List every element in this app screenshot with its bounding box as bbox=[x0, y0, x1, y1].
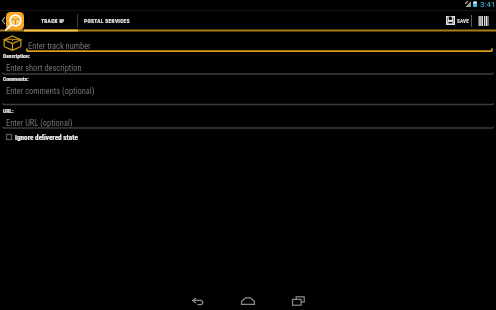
staticText: Ignore delivered state bbox=[15, 133, 78, 141]
staticText: URL: bbox=[3, 108, 14, 115]
button[interactable]: Back bbox=[174, 292, 222, 310]
button[interactable]: Enter comments (optional) bbox=[0, 85, 496, 99]
staticText: Description: bbox=[3, 53, 31, 60]
staticText: 3:41 bbox=[480, 0, 496, 9]
button[interactable]: Enter URL (optional) bbox=[0, 117, 496, 131]
button[interactable]: Home bbox=[224, 292, 272, 310]
staticText: Comments: bbox=[3, 76, 29, 83]
button[interactable]: Recent apps bbox=[274, 292, 322, 310]
button[interactable]: SAVE bbox=[446, 11, 470, 30]
button[interactable]: Track app icon bbox=[4, 10, 25, 31]
staticText: Enter comments (optional) bbox=[6, 86, 95, 96]
staticText: POSTAL SERVICES bbox=[84, 18, 130, 24]
button[interactable]: Enter track number bbox=[26, 33, 496, 52]
staticText: TRACK № bbox=[41, 18, 65, 24]
button[interactable]: Navigate up bbox=[0, 11, 6, 30]
button[interactable]: TRACK № bbox=[26, 11, 77, 30]
button[interactable]: Scan barcode bbox=[474, 11, 492, 30]
staticText: Enter track number bbox=[28, 41, 91, 51]
button[interactable]: Ignore delivered state bbox=[0, 131, 82, 142]
staticText: Enter short description bbox=[6, 63, 82, 73]
button[interactable]: POSTAL SERVICES bbox=[78, 11, 134, 30]
staticText: SAVE bbox=[457, 18, 470, 24]
staticText: Enter URL (optional) bbox=[6, 118, 73, 128]
button[interactable]: Enter short description bbox=[0, 62, 496, 76]
